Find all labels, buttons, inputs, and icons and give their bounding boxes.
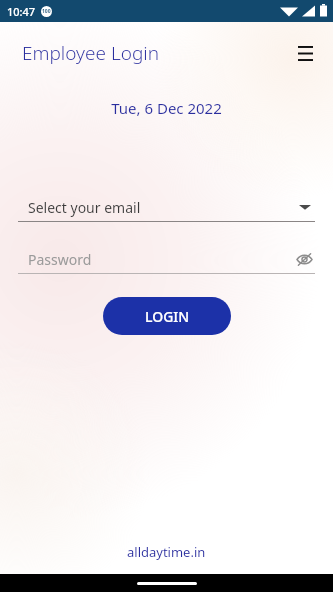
staticText: 10:47: [7, 4, 36, 19]
button[interactable]: LOGIN: [103, 297, 231, 335]
staticText: Employee Login: [22, 40, 160, 66]
button[interactable]: Menu: [288, 36, 322, 70]
staticText: Password: [28, 250, 293, 269]
staticText: 100: [42, 8, 51, 15]
staticText: Tue, 6 Dec 2022: [111, 98, 222, 118]
button[interactable]: Select your email: [18, 193, 315, 222]
staticText: Select your email: [28, 198, 299, 217]
button[interactable]: alldaytime.in: [127, 543, 206, 561]
staticText: LOGIN: [145, 307, 190, 326]
button[interactable]: Show password: [293, 248, 315, 270]
button[interactable]: Password: [18, 245, 315, 273]
